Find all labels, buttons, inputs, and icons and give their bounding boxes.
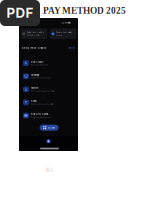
staticText: Swap crypto for another: [31, 77, 51, 79]
staticText: Buy Crypto: [31, 60, 43, 63]
button[interactable]: $: [19, 57, 78, 70]
staticText: Receive: [31, 87, 38, 89]
button[interactable]: Receive: [19, 83, 78, 96]
staticText: See all: [68, 47, 75, 49]
staticText: PDF: [6, 5, 33, 21]
staticText: Send: [31, 100, 36, 102]
staticText: Send crypto to another wallet: [31, 103, 54, 105]
button[interactable]: Send: [19, 96, 78, 109]
button[interactable]: Scan: [40, 125, 59, 131]
staticText: Shop with Crypto: [22, 46, 47, 49]
button[interactable]: See all: [68, 47, 75, 49]
staticText: Finally, don't add a: [27, 31, 44, 34]
staticText: recovery code: [27, 34, 40, 36]
staticText: access: [56, 34, 62, 36]
staticText: Scan: [48, 126, 55, 129]
staticText: Buy gift cards with crypto: [31, 116, 51, 118]
button[interactable]: Buy Gift Cards: [19, 109, 78, 122]
staticText: Secure your wallet: [56, 31, 72, 34]
button[interactable]: PDF: [0, 0, 40, 26]
button[interactable]: Secure your wallet: [50, 29, 77, 39]
staticText: $: [25, 62, 27, 65]
button[interactable]: Finally, don't add a: [21, 29, 47, 39]
staticText: Exchange: [31, 73, 39, 76]
staticText: Buy crypto with cards: [31, 64, 48, 66]
staticText: PAY METHOD 2025: [43, 5, 126, 16]
staticText: Buy Gift Cards: [31, 113, 48, 116]
button[interactable]: Exchange: [19, 70, 78, 83]
staticText: K's: [46, 167, 53, 173]
staticText: Get crypto from another wallet: [31, 90, 55, 92]
